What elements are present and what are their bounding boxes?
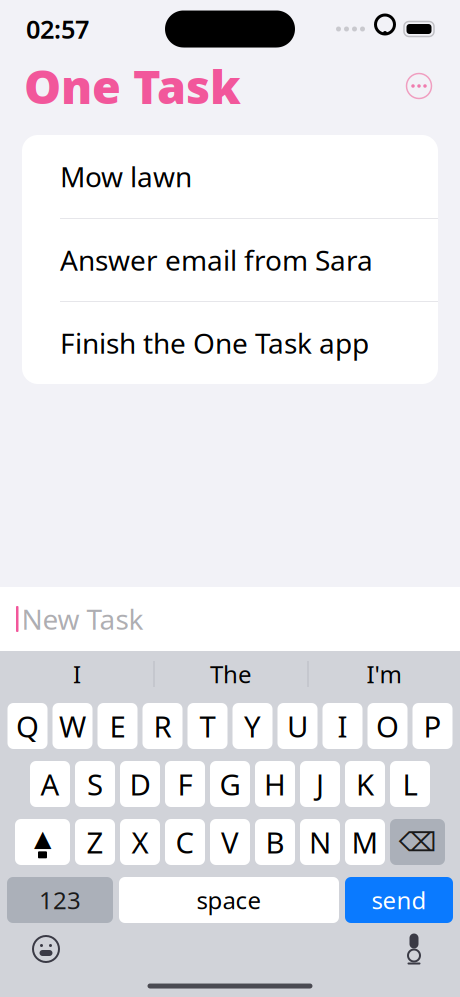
- staticText: G: [219, 764, 240, 803]
- button[interactable]: send: [345, 877, 453, 923]
- staticText: Z: [86, 822, 103, 861]
- button[interactable]: S: [75, 761, 115, 807]
- button[interactable]: R: [142, 703, 182, 749]
- button[interactable]: L: [390, 761, 430, 807]
- staticText: ⌫: [398, 827, 436, 857]
- button[interactable]: H: [255, 761, 295, 807]
- button[interactable]: Emoji keyboard: [24, 927, 68, 971]
- staticText: The: [210, 658, 252, 690]
- staticText: One Task: [24, 55, 241, 117]
- staticText: New Task: [21, 600, 143, 638]
- staticText: Q: [16, 706, 39, 745]
- staticText: Y: [244, 706, 261, 745]
- button[interactable]: M: [345, 819, 385, 865]
- button[interactable]: A: [30, 761, 70, 807]
- button[interactable]: U: [277, 703, 317, 749]
- staticText: S: [87, 764, 103, 803]
- staticText: E: [109, 706, 125, 745]
- staticText: I: [73, 658, 81, 690]
- staticText: J: [316, 764, 324, 803]
- staticText: A: [40, 764, 59, 803]
- button[interactable]: Y: [232, 703, 272, 749]
- button[interactable]: 123: [7, 877, 113, 923]
- button[interactable]: K: [345, 761, 385, 807]
- button[interactable]: space: [119, 877, 339, 923]
- staticText: C: [175, 822, 194, 861]
- staticText: H: [264, 764, 286, 803]
- staticText: 02:57: [26, 12, 89, 46]
- button[interactable]: I: [322, 703, 362, 749]
- staticText: send: [371, 884, 426, 916]
- button[interactable]: D: [120, 761, 160, 807]
- button[interactable]: I: [0, 651, 153, 697]
- staticText: M: [351, 822, 378, 861]
- staticText: L: [402, 764, 417, 803]
- staticText: R: [153, 706, 171, 745]
- staticText: I: [337, 706, 347, 745]
- button[interactable]: Mow lawn: [22, 135, 438, 218]
- button[interactable]: Dictation: [392, 927, 436, 971]
- button[interactable]: Finish the One Task app: [22, 301, 438, 384]
- button[interactable]: Answer email from Sara: [22, 218, 438, 301]
- staticText: W: [59, 706, 86, 745]
- button[interactable]: Z: [75, 819, 115, 865]
- staticText: space: [196, 884, 261, 916]
- button[interactable]: The: [154, 651, 307, 697]
- button[interactable]: T: [187, 703, 227, 749]
- button[interactable]: F: [165, 761, 205, 807]
- button[interactable]: B: [255, 819, 295, 865]
- button[interactable]: V: [210, 819, 250, 865]
- button[interactable]: W: [52, 703, 92, 749]
- staticText: Mow lawn: [60, 158, 192, 195]
- button[interactable]: Shift: [15, 819, 70, 865]
- staticText: N: [309, 822, 331, 861]
- button[interactable]: C: [165, 819, 205, 865]
- staticText: U: [287, 706, 308, 745]
- button[interactable]: P: [412, 703, 452, 749]
- staticText: I'm: [366, 658, 401, 690]
- staticText: V: [221, 822, 239, 861]
- staticText: X: [131, 822, 148, 861]
- button[interactable]: Delete: [390, 819, 445, 865]
- button[interactable]: G: [210, 761, 250, 807]
- button[interactable]: O: [367, 703, 407, 749]
- staticText: Finish the One Task app: [60, 324, 369, 362]
- staticText: ▲: [34, 826, 51, 851]
- button[interactable]: Q: [7, 703, 47, 749]
- button[interactable]: E: [97, 703, 137, 749]
- staticText: D: [129, 764, 150, 803]
- staticText: P: [423, 706, 441, 745]
- button[interactable]: J: [300, 761, 340, 807]
- button[interactable]: X: [120, 819, 160, 865]
- staticText: B: [265, 822, 284, 861]
- button[interactable]: I'm: [308, 651, 459, 697]
- staticText: Answer email from Sara: [60, 241, 373, 279]
- button[interactable]: More options: [402, 69, 436, 103]
- staticText: O: [376, 706, 399, 745]
- staticText: K: [356, 764, 374, 803]
- staticText: 123: [39, 884, 81, 916]
- button[interactable]: N: [300, 819, 340, 865]
- staticText: T: [199, 706, 215, 745]
- staticText: F: [177, 764, 192, 803]
